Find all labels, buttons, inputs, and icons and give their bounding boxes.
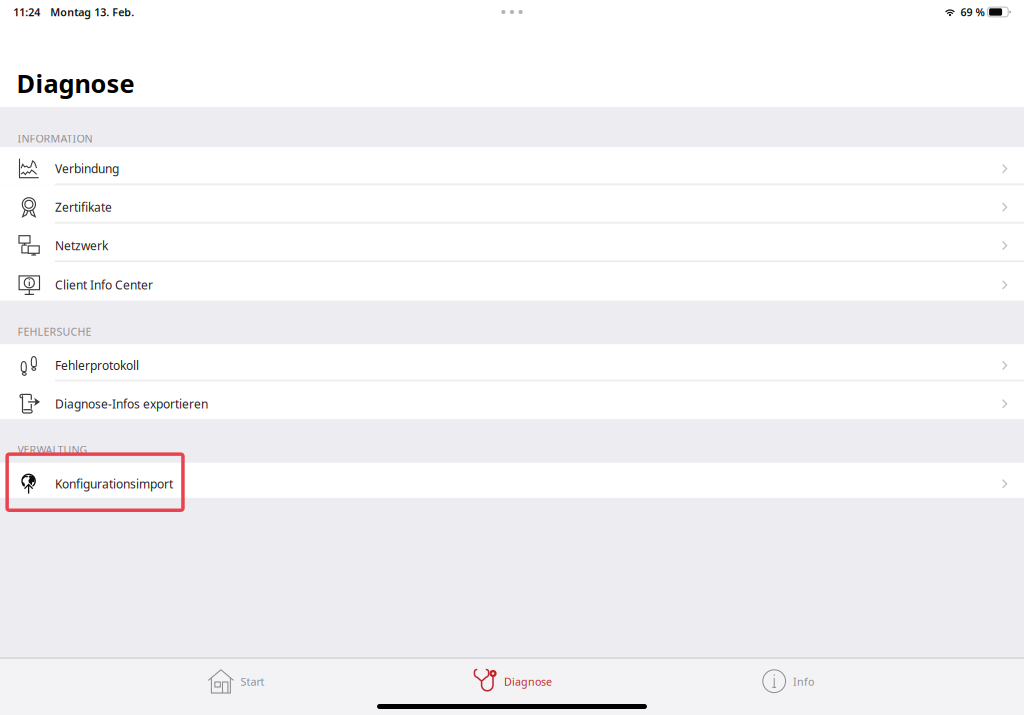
staticText: FEHLERSUCHE — [18, 324, 92, 339]
staticText: Verbindung — [55, 161, 119, 177]
staticText: Montag 13. Feb. — [50, 5, 134, 19]
staticText: Info — [793, 674, 814, 689]
staticText: INFORMATION — [18, 131, 93, 145]
staticText: Start — [240, 674, 264, 689]
staticText: 69 % — [961, 5, 985, 19]
staticText: Client Info Center — [55, 277, 153, 293]
button[interactable]: Verbindung — [0, 147, 1024, 185]
button[interactable]: Client Info Center — [0, 262, 1024, 301]
staticText: 11:24 — [13, 5, 40, 19]
button[interactable]: Start — [98, 658, 374, 705]
staticText: Diagnose-Infos exportieren — [55, 396, 208, 412]
staticText: Diagnose — [504, 674, 552, 689]
button[interactable]: Diagnose — [374, 658, 650, 705]
button[interactable]: Netzwerk — [0, 224, 1024, 262]
staticText: Konfigurationsimport — [55, 476, 173, 492]
button[interactable]: Diagnose-Infos exportieren — [0, 382, 1024, 419]
button[interactable]: Fehlerprotokoll — [0, 344, 1024, 382]
staticText: Diagnose — [17, 66, 135, 100]
button[interactable]: Zertifikate — [0, 185, 1024, 224]
button[interactable]: Konfigurationsimport — [0, 463, 1024, 498]
staticText: Zertifikate — [55, 199, 112, 215]
staticText: VERWALTUNG — [18, 442, 88, 457]
staticText: Fehlerprotokoll — [55, 357, 139, 373]
button[interactable]: Info — [650, 658, 926, 705]
staticText: Netzwerk — [55, 237, 108, 253]
